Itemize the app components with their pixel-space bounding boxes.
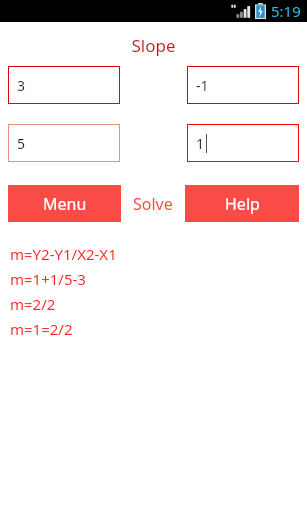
button[interactable]: 1	[187, 124, 299, 162]
staticText: Solve	[133, 193, 173, 215]
staticText: Help	[225, 193, 260, 215]
staticText: -1	[196, 76, 209, 95]
staticText: m=Y2-Y1/X2-X1	[10, 244, 117, 264]
staticText: m=1+1/5-3	[10, 269, 86, 289]
staticText: m=2/2	[10, 294, 56, 314]
staticText: 3	[17, 76, 26, 95]
button[interactable]: 5	[8, 124, 120, 162]
button[interactable]: 3	[8, 66, 120, 104]
staticText: Slope	[131, 34, 176, 57]
button[interactable]: Help	[185, 185, 299, 222]
staticText: 5	[17, 134, 26, 153]
staticText: 1	[196, 134, 205, 153]
button[interactable]: -1	[187, 66, 299, 104]
staticText: Menu	[43, 193, 87, 215]
button[interactable]: Menu	[8, 185, 121, 222]
staticText: 5:19	[271, 1, 301, 21]
staticText: m=1=2/2	[10, 319, 73, 339]
button[interactable]: Solve	[121, 185, 185, 222]
